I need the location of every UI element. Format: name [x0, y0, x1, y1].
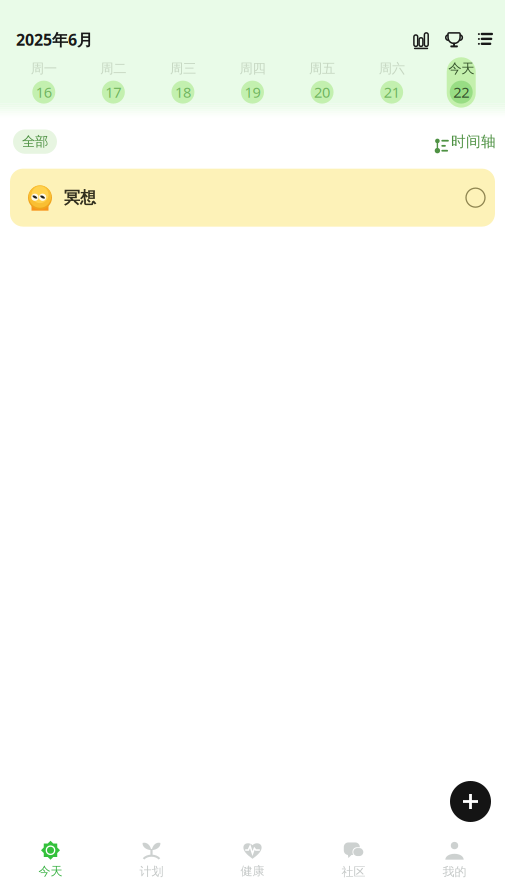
staticText: 19 — [244, 82, 260, 102]
button[interactable]: 冥想 — [10, 169, 495, 227]
button[interactable]: 周二 — [79, 57, 148, 108]
staticText: 时间轴 — [451, 133, 496, 151]
button[interactable]: 今天 — [426, 57, 496, 108]
staticText: 周六 — [379, 60, 405, 77]
staticText: 2025年6月 — [16, 29, 93, 50]
button[interactable]: 成就 — [441, 32, 467, 47]
staticText: 今天 — [448, 60, 474, 77]
staticText: 周五 — [309, 60, 335, 77]
staticText: 21 — [384, 82, 400, 102]
staticText: 我的 — [442, 864, 466, 879]
button[interactable]: 社区 — [303, 830, 404, 884]
staticText: 冥想 — [64, 188, 96, 207]
button[interactable]: 时间轴 — [431, 129, 496, 155]
staticText: 22 — [453, 82, 469, 102]
staticText: 周二 — [100, 60, 126, 77]
staticText: 社区 — [341, 864, 365, 879]
button[interactable]: 今天 — [0, 831, 101, 883]
button[interactable]: 周一 — [9, 57, 79, 108]
button[interactable]: 计划 — [101, 830, 202, 884]
button[interactable]: 清单 — [474, 32, 497, 47]
button[interactable]: 健康 — [202, 831, 303, 883]
staticText: 计划 — [139, 864, 163, 879]
button[interactable]: 周六 — [357, 57, 426, 108]
button[interactable]: 全部 — [13, 129, 57, 154]
staticText: 周四 — [239, 60, 265, 77]
button[interactable]: 我的 — [404, 830, 505, 884]
staticText: 周三 — [170, 60, 196, 77]
staticText: 全部 — [22, 133, 48, 150]
button[interactable]: 周三 — [148, 57, 218, 108]
button[interactable]: 统计 — [410, 32, 432, 48]
button[interactable]: 添加 — [450, 781, 491, 822]
staticText: 健康 — [240, 863, 264, 878]
staticText: 16 — [36, 82, 52, 102]
staticText: 17 — [105, 82, 121, 102]
button[interactable]: 周五 — [287, 57, 357, 108]
button[interactable]: 周四 — [218, 57, 287, 108]
staticText: 18 — [175, 82, 191, 102]
staticText: 今天 — [38, 864, 62, 878]
staticText: 周一 — [31, 60, 57, 77]
staticText: 20 — [314, 82, 330, 102]
